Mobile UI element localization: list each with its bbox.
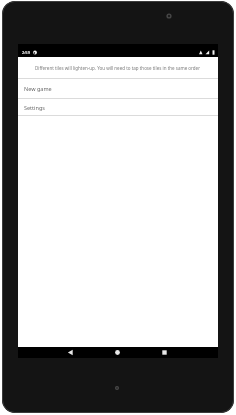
staticText: Settings <box>24 104 45 111</box>
staticText: New game <box>24 85 52 92</box>
button[interactable] <box>159 347 170 358</box>
button[interactable]: Settings <box>18 99 218 115</box>
button[interactable]: New game <box>18 79 218 98</box>
button[interactable] <box>112 347 123 358</box>
button[interactable] <box>65 347 76 358</box>
staticText: Different tiles will lighten-up. You wil… <box>35 65 201 71</box>
staticText: 2:59 <box>22 50 30 55</box>
